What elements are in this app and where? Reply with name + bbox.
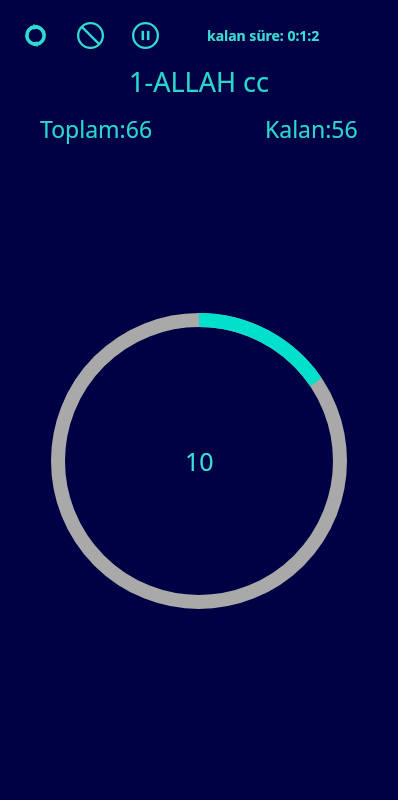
- button[interactable]: Pause: [127, 17, 163, 53]
- staticText: 10: [185, 444, 214, 478]
- staticText: kalan süre: 0:1:2: [207, 26, 320, 45]
- staticText: 1-ALLAH cc: [129, 63, 269, 100]
- button[interactable]: Reset counter: [17, 17, 53, 53]
- staticText: Kalan:56: [265, 113, 358, 144]
- button[interactable]: Stop: [72, 17, 108, 53]
- staticText: Toplam:66: [40, 113, 153, 144]
- button[interactable]: 10: [51, 313, 347, 609]
